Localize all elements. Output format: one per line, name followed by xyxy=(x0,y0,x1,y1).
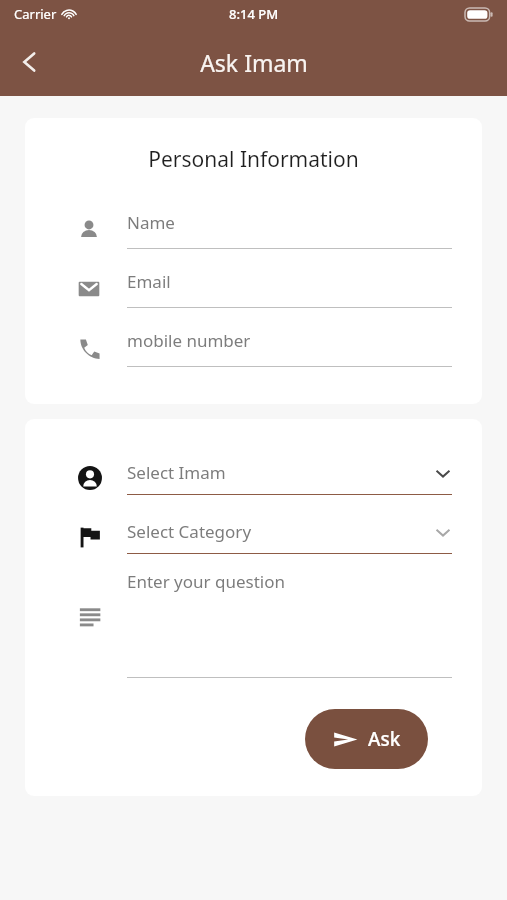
button[interactable]: Select Imam xyxy=(25,448,482,507)
button[interactable]: mobile number xyxy=(25,318,482,377)
staticText: mobile number xyxy=(127,329,251,352)
staticText: Enter your question xyxy=(127,570,286,593)
button[interactable]: Enter your question xyxy=(25,570,482,690)
staticText: Personal Information xyxy=(25,145,482,174)
staticText: Carrier xyxy=(14,5,57,23)
staticText: 8:14 PM xyxy=(229,5,279,23)
button[interactable]: Email xyxy=(25,259,482,318)
staticText: Select Imam xyxy=(127,461,434,484)
staticText: Select Category xyxy=(127,520,434,543)
staticText: Ask Imam xyxy=(200,47,308,78)
button[interactable]: Name xyxy=(25,200,482,259)
staticText: Name xyxy=(127,211,175,234)
button[interactable]: Back xyxy=(4,37,54,87)
staticText: Email xyxy=(127,270,171,293)
button[interactable]: Select Category xyxy=(25,507,482,566)
button[interactable]: Ask xyxy=(305,709,428,769)
staticText: Ask xyxy=(368,726,401,752)
